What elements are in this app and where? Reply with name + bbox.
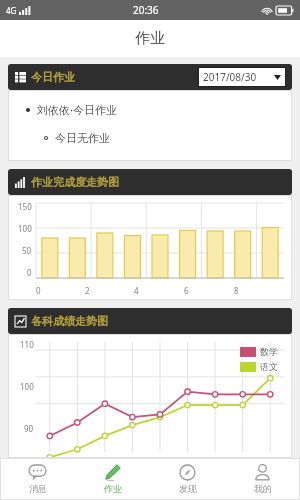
- staticText: 作业: [104, 483, 122, 494]
- staticText: 数学: [260, 346, 278, 357]
- staticText: 今日作业: [31, 70, 75, 84]
- button[interactable]: 消息: [0, 458, 75, 500]
- button[interactable]: 各科成绩走势图: [8, 308, 292, 334]
- staticText: 刘依依·今日作业: [37, 102, 117, 117]
- button[interactable]: 我的: [225, 458, 300, 500]
- staticText: 消息: [29, 483, 47, 494]
- button[interactable]: 作业完成度走势图: [8, 169, 292, 195]
- staticText: 今日无作业: [55, 131, 110, 145]
- other: 发现: [179, 464, 196, 481]
- staticText: 我的: [254, 483, 272, 494]
- staticText: 0: [27, 267, 32, 278]
- staticText: 6: [184, 285, 189, 296]
- staticText: 作业: [135, 29, 165, 48]
- staticText: 2: [85, 285, 90, 296]
- button[interactable]: 今日作业: [8, 64, 292, 90]
- other: 作业: [104, 464, 121, 481]
- staticText: 语文: [260, 361, 278, 372]
- staticText: 90: [24, 423, 34, 434]
- staticText: 2017/08/30: [203, 70, 257, 84]
- staticText: 0: [36, 285, 41, 296]
- staticText: 50: [22, 245, 32, 256]
- staticText: 8: [234, 285, 239, 296]
- staticText: 100: [20, 381, 34, 392]
- staticText: 100: [18, 223, 32, 234]
- staticText: 20:36: [133, 3, 159, 17]
- staticText: 110: [20, 339, 34, 350]
- button[interactable]: 发现: [150, 458, 225, 500]
- button[interactable]: 作业: [75, 458, 150, 500]
- staticText: 4: [134, 285, 139, 296]
- other: 消息: [29, 464, 46, 481]
- staticText: 各科成绩走势图: [31, 314, 108, 328]
- other: 我的: [254, 464, 271, 481]
- staticText: 作业完成度走势图: [31, 175, 119, 189]
- button[interactable]: 2017/08/30: [198, 67, 286, 87]
- staticText: 发现: [179, 483, 197, 494]
- staticText: 4G: [6, 5, 17, 16]
- staticText: 150: [18, 201, 32, 212]
